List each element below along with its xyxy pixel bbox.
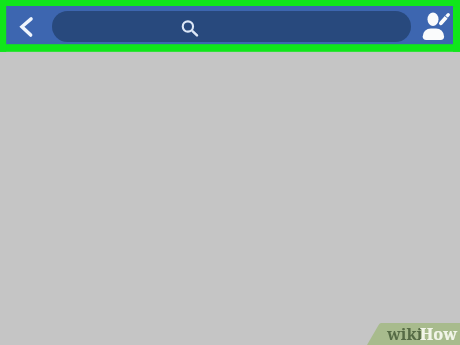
button[interactable]: Edit profile (417, 5, 453, 41)
button[interactable]: Search (52, 11, 411, 42)
staticText: How (420, 323, 458, 345)
button[interactable]: Back (6, 3, 46, 43)
staticText: wiki (387, 323, 423, 345)
